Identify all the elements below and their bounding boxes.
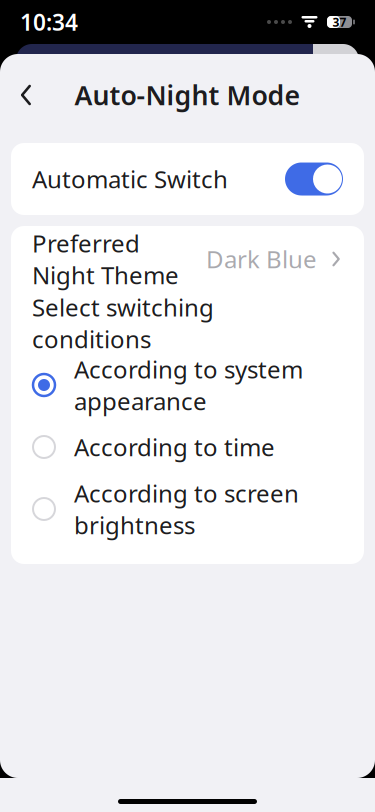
button[interactable]: Back <box>4 73 48 117</box>
button[interactable]: According to screen brightness <box>11 478 364 540</box>
staticText: Auto-Night Mode <box>74 77 300 113</box>
staticText: Select switching conditions <box>32 291 214 355</box>
staticText: Dark Blue <box>206 243 317 275</box>
staticText: According to time <box>74 431 275 463</box>
staticText: 10:34 <box>20 7 78 37</box>
button[interactable]: Preferred Night Theme <box>11 226 364 292</box>
staticText: According to system appearance <box>74 353 303 417</box>
button[interactable]: According to time <box>11 416 364 478</box>
staticText: According to screen brightness <box>74 477 299 541</box>
staticText: Automatic Switch <box>32 163 228 195</box>
button[interactable]: Automatic Switch <box>11 143 364 215</box>
staticText: Preferred Night Theme <box>32 227 179 291</box>
button[interactable]: According to system appearance <box>11 354 364 416</box>
staticText: 37 <box>332 14 346 30</box>
